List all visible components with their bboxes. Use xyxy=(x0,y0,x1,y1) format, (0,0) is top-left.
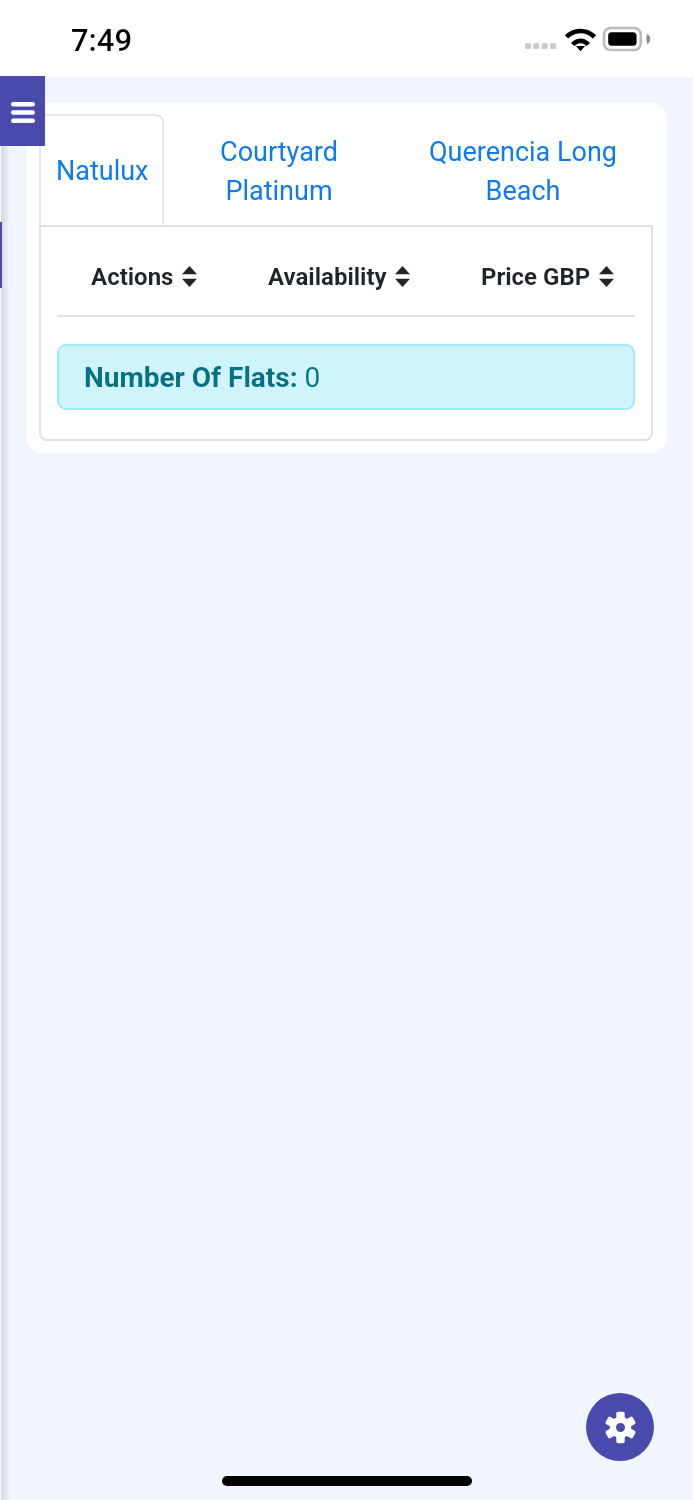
staticText: Number Of Flats: 0 xyxy=(84,361,321,394)
button[interactable]: Availability xyxy=(249,238,429,315)
button[interactable]: Querencia Long Beach xyxy=(393,117,653,225)
button[interactable]: Actions xyxy=(39,238,249,315)
button[interactable]: Open navigation menu xyxy=(0,76,45,146)
staticText: 7:49 xyxy=(71,22,133,58)
staticText: Courtyard Platinum xyxy=(199,136,359,206)
staticText: Querencia Long Beach xyxy=(427,136,619,206)
staticText: Natulux xyxy=(56,155,149,187)
staticText: Price GBP xyxy=(481,263,591,291)
button[interactable]: Courtyard Platinum xyxy=(165,117,393,225)
button[interactable]: Price GBP xyxy=(442,238,653,315)
button[interactable]: Natulux xyxy=(40,117,165,225)
button[interactable]: Settings xyxy=(586,1393,654,1461)
staticText: Actions xyxy=(91,263,174,291)
staticText: Availability xyxy=(268,263,387,291)
